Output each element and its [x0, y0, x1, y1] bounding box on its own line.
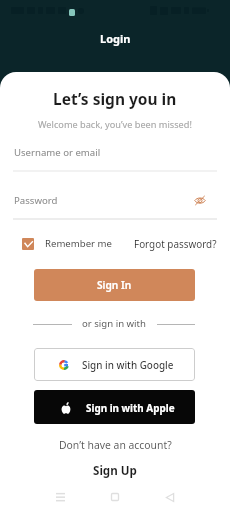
- button[interactable]: Show password: [194, 194, 206, 206]
- button[interactable]: Back: [158, 485, 182, 509]
- staticText: Sign in with Apple: [86, 401, 175, 414]
- staticText: or sign in with: [82, 317, 146, 330]
- staticText: Let’s sign you in: [53, 88, 177, 109]
- staticText: Sign In: [97, 278, 132, 292]
- button[interactable]: Sign Up: [93, 463, 137, 479]
- button[interactable]: Remember me: [22, 237, 112, 250]
- button[interactable]: Sign in with Google: [34, 348, 195, 381]
- button[interactable]: Sign In: [34, 269, 195, 301]
- staticText: Sign in with Google: [82, 358, 174, 371]
- staticText: Forgot password?: [134, 237, 217, 250]
- button[interactable]: Forgot password?: [134, 237, 217, 250]
- button[interactable]: Sign in with Apple: [34, 390, 195, 424]
- staticText: Username or email: [14, 146, 101, 159]
- staticText: Login: [100, 31, 131, 46]
- staticText: Sign Up: [93, 463, 137, 479]
- button[interactable]: Home: [103, 485, 127, 509]
- staticText: Remember me: [45, 237, 112, 250]
- staticText: Password: [14, 194, 58, 207]
- staticText: Don’t have an account?: [59, 438, 172, 452]
- button[interactable]: Recent apps: [48, 485, 72, 509]
- staticText: Welcome back, you’ve been missed!: [38, 118, 192, 131]
